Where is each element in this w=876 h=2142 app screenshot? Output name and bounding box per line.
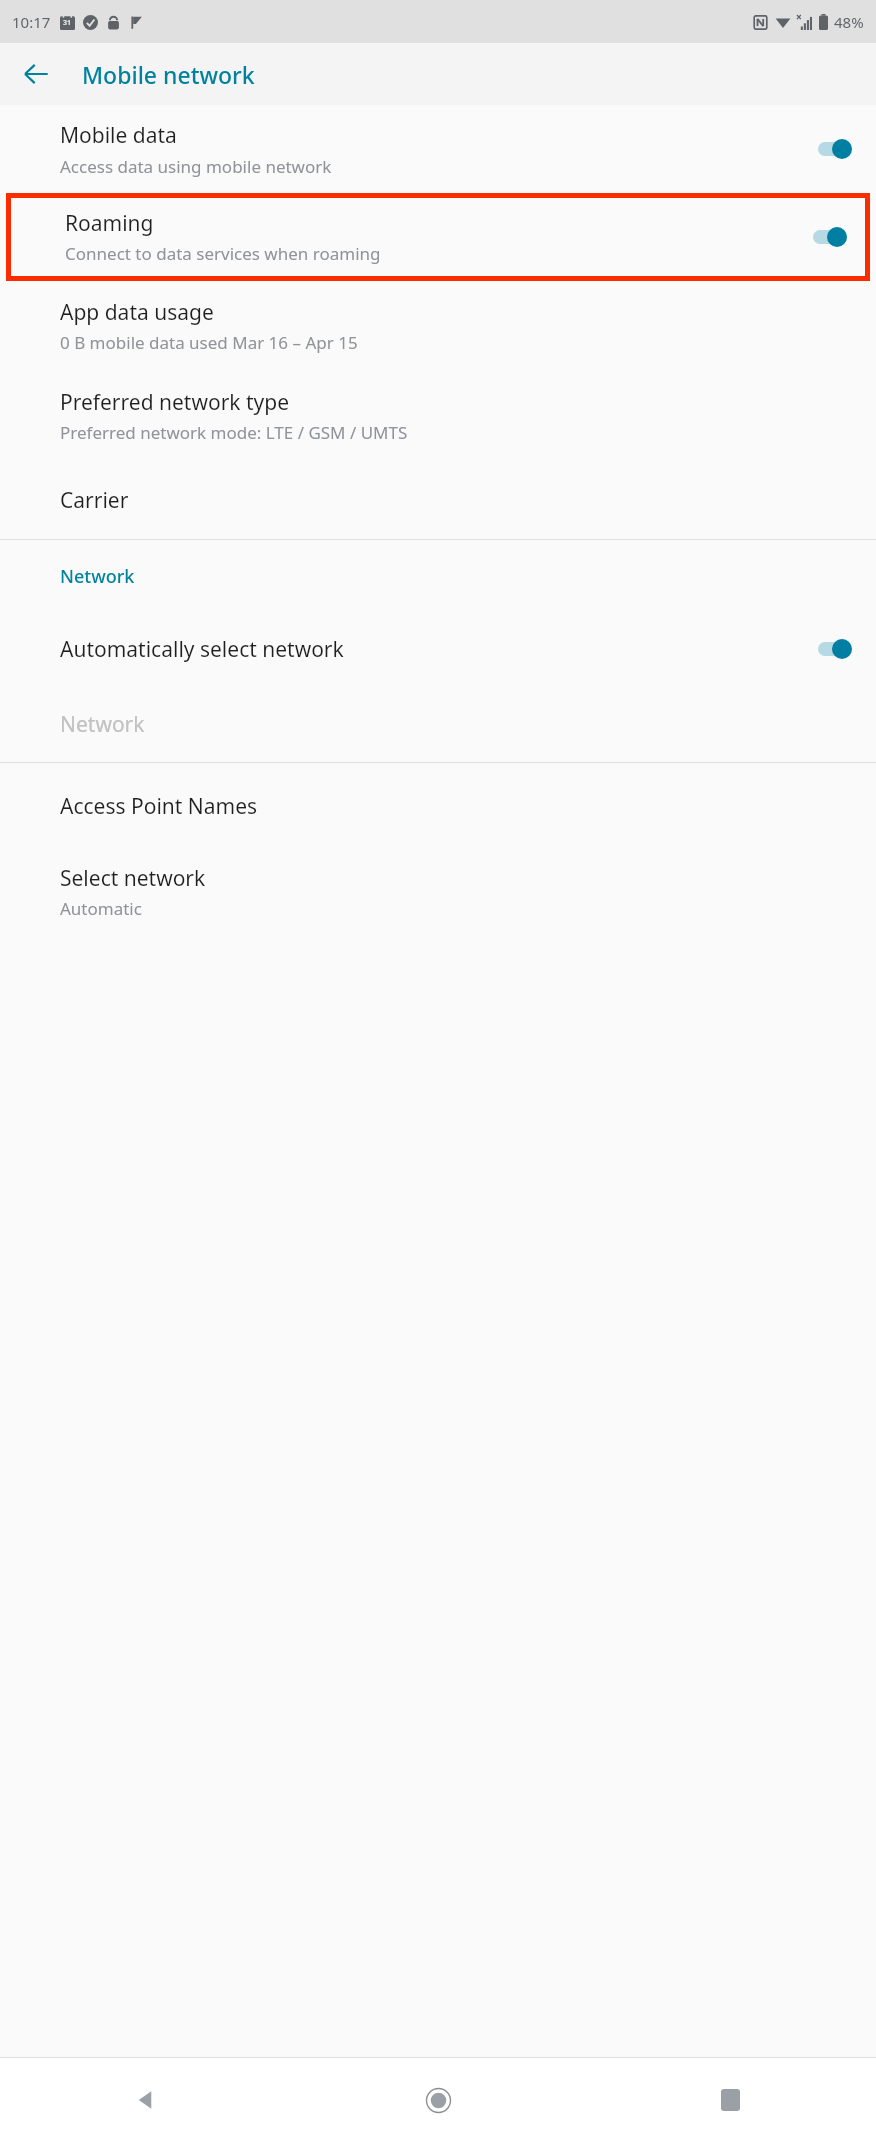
staticText: Mobile data [60, 121, 177, 150]
button[interactable]: Preferred network type [0, 371, 876, 461]
button[interactable]: Access Point Names [0, 763, 876, 849]
staticText: Mobile network [82, 59, 255, 90]
staticText: Access data using mobile network [60, 155, 332, 178]
staticText: Connect to data services when roaming [65, 242, 381, 265]
button[interactable]: Roaming [11, 198, 865, 276]
button[interactable]: Mobile data [0, 105, 876, 193]
staticText: 31 [63, 18, 72, 28]
button[interactable]: Back [0, 2058, 292, 2142]
button[interactable]: Automatically select network [0, 612, 876, 686]
button[interactable]: Back [8, 46, 64, 102]
staticText: Network [60, 710, 145, 739]
staticText: 0 B mobile data used Mar 16 – Apr 15 [60, 331, 358, 354]
staticText: Access Point Names [60, 792, 258, 821]
button[interactable]: Recent apps [584, 2058, 876, 2142]
staticText: 48% [834, 12, 864, 32]
staticText: 10:17 [12, 12, 51, 32]
staticText: Carrier [60, 486, 129, 515]
button[interactable]: Home [292, 2058, 584, 2142]
staticText: Automatic [60, 897, 142, 920]
staticText: Network [60, 564, 135, 589]
button[interactable]: Select network [0, 849, 876, 935]
staticText: Preferred network type [60, 388, 290, 417]
button[interactable]: App data usage [0, 281, 876, 371]
staticText: Roaming [65, 209, 154, 238]
staticText: Select network [60, 864, 206, 893]
staticText: App data usage [60, 298, 214, 327]
staticText: Preferred network mode: LTE / GSM / UMTS [60, 421, 408, 444]
staticText: Automatically select network [60, 635, 808, 664]
button[interactable]: Carrier [0, 461, 876, 539]
